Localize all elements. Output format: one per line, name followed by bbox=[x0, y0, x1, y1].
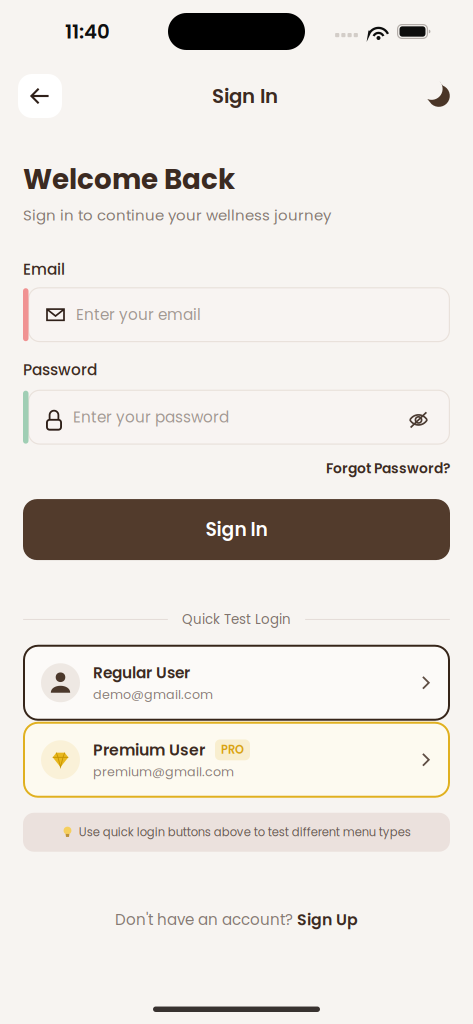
staticText: Don't have an account? bbox=[115, 909, 297, 930]
button[interactable]: Back bbox=[18, 74, 62, 118]
staticText: Password bbox=[23, 359, 97, 381]
button[interactable]: Sign Up bbox=[297, 909, 358, 931]
staticText: Sign in to continue your wellness journe… bbox=[23, 205, 331, 226]
button[interactable]: Forgot Password? bbox=[326, 459, 450, 478]
staticText: premium@gmail.com bbox=[93, 763, 234, 781]
staticText: Regular User bbox=[93, 662, 190, 684]
button[interactable]: Sign In bbox=[23, 499, 450, 560]
staticText: Quick Test Login bbox=[182, 610, 291, 629]
staticText: demo@gmail.com bbox=[93, 686, 213, 703]
staticText: Forgot Password? bbox=[326, 459, 450, 478]
staticText: Sign Up bbox=[297, 909, 358, 931]
button[interactable]: Dark mode bbox=[422, 79, 456, 113]
staticText: Sign In bbox=[212, 82, 278, 110]
staticText: Sign In bbox=[205, 516, 267, 543]
staticText: Enter your password bbox=[73, 406, 229, 428]
staticText: Use quick login buttons above to test di… bbox=[79, 824, 411, 840]
staticText: Welcome Back bbox=[23, 160, 235, 199]
staticText: Email bbox=[23, 259, 65, 280]
button[interactable]: Regular User bbox=[23, 645, 450, 721]
staticText: Enter your email bbox=[76, 304, 201, 325]
button[interactable]: Premium User bbox=[23, 722, 450, 798]
staticText: 11:40 bbox=[65, 18, 110, 45]
staticText: Premium User bbox=[93, 739, 205, 761]
staticText: PRO bbox=[221, 742, 244, 758]
